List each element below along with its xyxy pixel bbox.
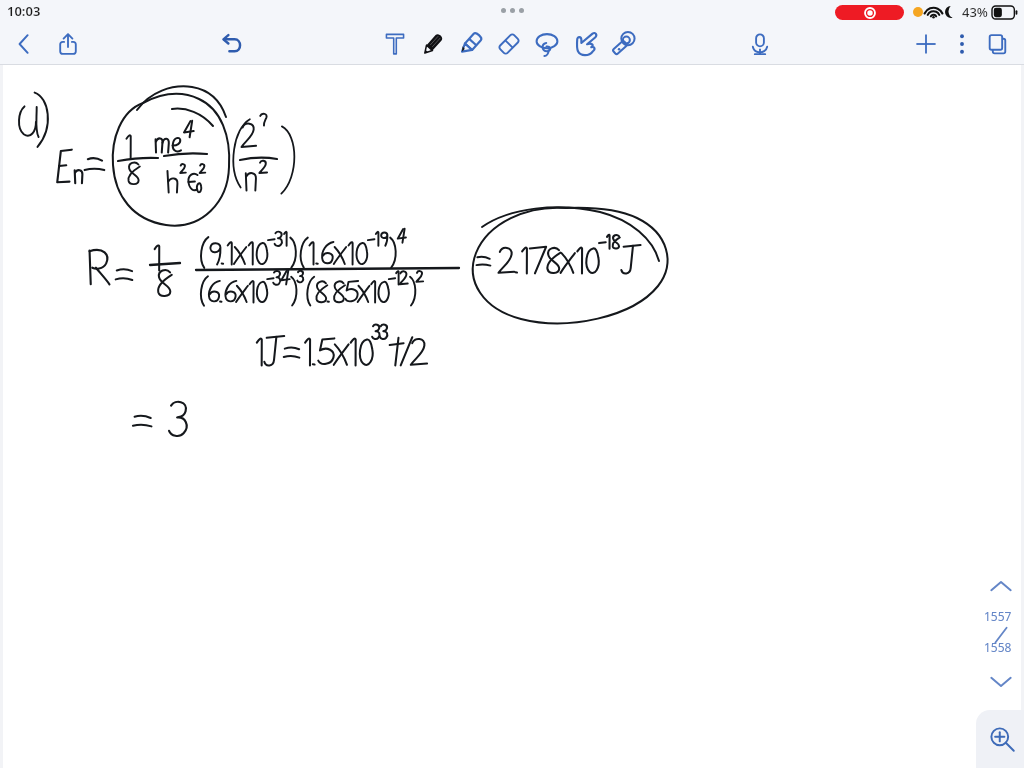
button[interactable]: Text tool (376, 24, 414, 64)
button[interactable]: Eraser tool (490, 24, 528, 64)
button[interactable]: Back (4, 24, 44, 64)
staticText: 1557 (984, 608, 1012, 624)
button[interactable]: Share (48, 24, 88, 64)
button[interactable]: Lasso tool (528, 24, 566, 64)
button[interactable]: Add (906, 24, 946, 64)
button[interactable]: Pages (978, 24, 1018, 64)
button[interactable]: Previous page (986, 571, 1016, 601)
button[interactable]: Microphone (740, 24, 780, 64)
button[interactable]: Hand tool (566, 24, 604, 64)
staticText: 1558 (984, 639, 1012, 655)
button[interactable]: More options (946, 24, 978, 64)
button[interactable]: Next page (986, 667, 1016, 697)
staticText: 43% (962, 3, 988, 21)
button[interactable]: Highlighter tool (452, 24, 490, 64)
staticText: 10:03 (7, 2, 41, 20)
button[interactable]: Zoom in (976, 710, 1024, 768)
button[interactable]: Undo (212, 24, 252, 64)
button[interactable]: Pen tool (414, 24, 452, 64)
button[interactable]: Laser pointer (604, 24, 642, 64)
